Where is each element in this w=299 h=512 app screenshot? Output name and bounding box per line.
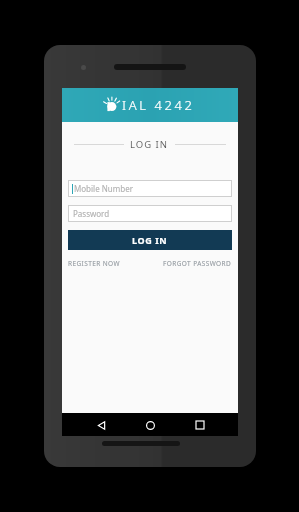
- staticText: Password: [73, 208, 110, 219]
- button[interactable]: FORGOT PASSWORD: [163, 259, 232, 268]
- staticText: LOG IN: [132, 234, 168, 246]
- staticText: REGISTER NOW: [68, 259, 120, 268]
- button[interactable]: Back: [90, 414, 112, 436]
- button[interactable]: Mobile Number: [68, 180, 232, 197]
- staticText: FORGOT PASSWORD: [163, 259, 232, 268]
- button[interactable]: Recent apps: [189, 414, 211, 436]
- button[interactable]: LOG IN: [68, 230, 232, 250]
- button[interactable]: Home: [139, 414, 161, 436]
- staticText: LOG IN: [130, 138, 169, 151]
- button[interactable]: REGISTER NOW: [68, 259, 120, 268]
- button[interactable]: Password: [68, 205, 232, 222]
- staticText: Mobile Number: [74, 183, 133, 194]
- staticText: IAL 4242: [122, 96, 195, 114]
